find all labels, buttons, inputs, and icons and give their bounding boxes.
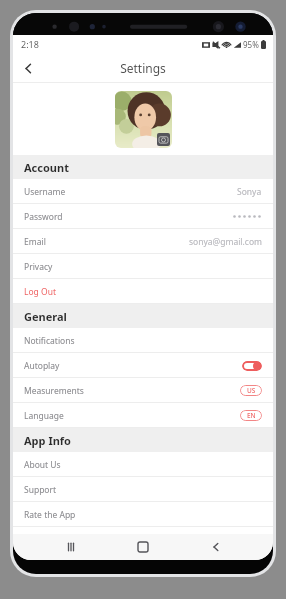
staticText: Language xyxy=(24,410,64,422)
button[interactable]: Username xyxy=(13,179,273,204)
button[interactable]: Recent apps xyxy=(56,534,86,560)
button[interactable]: Privacy xyxy=(13,254,273,279)
staticText: General xyxy=(24,309,67,324)
staticText: Support xyxy=(24,484,57,496)
staticText: Autoplay xyxy=(24,360,60,372)
staticText: Account xyxy=(24,160,69,175)
staticText: 95% xyxy=(243,39,259,50)
staticText: Measurements xyxy=(24,385,84,397)
staticText: App Info xyxy=(24,433,71,448)
staticText: EN xyxy=(247,411,256,420)
button[interactable]: Language xyxy=(13,403,273,428)
staticText: Log Out xyxy=(24,286,56,298)
button[interactable]: US xyxy=(240,385,262,396)
staticText: Settings xyxy=(120,60,166,76)
button[interactable]: Autoplay toggle xyxy=(242,361,262,371)
staticText: US xyxy=(247,386,256,395)
button[interactable]: Change profile photo xyxy=(115,91,172,148)
staticText: 2:18 xyxy=(21,38,39,50)
button[interactable]: Notifications xyxy=(13,328,273,353)
button[interactable]: About Us xyxy=(13,452,273,477)
button[interactable]: Autoplay xyxy=(13,353,273,378)
staticText: Sonya xyxy=(237,186,262,198)
staticText: sonya@gmail.com xyxy=(189,236,262,248)
staticText: Privacy xyxy=(24,261,53,273)
staticText: Rate the App xyxy=(24,509,76,521)
button[interactable]: Password xyxy=(13,204,273,229)
staticText: Notifications xyxy=(24,335,75,347)
button[interactable]: Home xyxy=(128,534,158,560)
button[interactable]: Back xyxy=(201,534,231,560)
button[interactable]: Rate the App xyxy=(13,502,273,527)
staticText: Email xyxy=(24,236,46,248)
staticText: About Us xyxy=(24,459,61,471)
button[interactable]: Support xyxy=(13,477,273,502)
staticText: Password xyxy=(24,211,63,223)
button[interactable]: Measurements xyxy=(13,378,273,403)
staticText: Username xyxy=(24,186,66,198)
button[interactable]: EN xyxy=(240,410,262,421)
button[interactable]: Back xyxy=(13,53,43,83)
button[interactable]: Email xyxy=(13,229,273,254)
button[interactable]: Log Out xyxy=(13,279,273,304)
